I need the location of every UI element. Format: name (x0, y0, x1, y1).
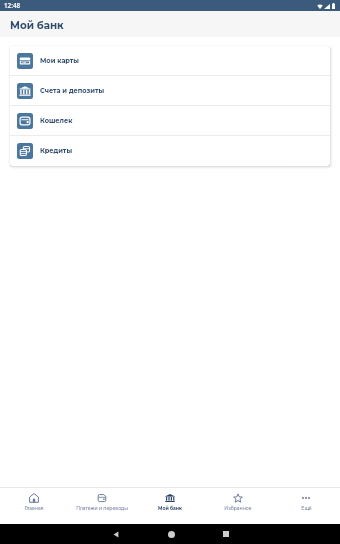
button[interactable]: Home (163, 526, 179, 542)
button[interactable]: Мой банк (136, 488, 204, 524)
staticText: Главная (24, 506, 44, 512)
button[interactable]: Мои карты (10, 46, 330, 76)
staticText: Кредиты (40, 147, 73, 155)
button[interactable]: Кредиты (10, 136, 330, 166)
button[interactable]: Счета и депозиты (10, 76, 330, 106)
staticText: Мой банк (10, 19, 64, 32)
button[interactable]: Главная (0, 488, 68, 524)
staticText: Избранное (224, 506, 252, 512)
button[interactable]: Recents (218, 526, 234, 542)
button[interactable]: Избранное (204, 488, 272, 524)
staticText: Платежи и переводы (76, 506, 128, 512)
staticText: Мой банк (158, 506, 182, 512)
button[interactable]: Ещё (272, 488, 340, 524)
staticText: Ещё (301, 506, 312, 512)
staticText: Кошелек (40, 117, 73, 125)
staticText: 12:48 (4, 1, 21, 10)
staticText: Счета и депозиты (40, 87, 105, 95)
button[interactable]: Платежи и переводы (68, 488, 136, 524)
staticText: Мои карты (40, 57, 79, 65)
button[interactable]: Back (108, 526, 124, 542)
button[interactable]: Кошелек (10, 106, 330, 136)
